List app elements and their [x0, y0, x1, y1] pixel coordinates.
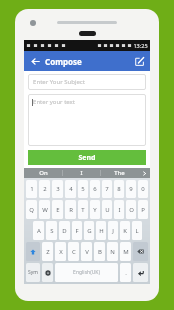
button[interactable]: W [39, 200, 50, 219]
button[interactable]: Edit [132, 54, 146, 68]
staticText: J [112, 227, 114, 235]
button[interactable]: Z [42, 242, 53, 261]
button[interactable]: 8 [114, 180, 124, 198]
staticText: W [42, 206, 48, 214]
button[interactable]: Q [26, 200, 37, 219]
staticText: V [85, 248, 89, 256]
button[interactable]: I [63, 168, 100, 178]
button[interactable]: K [120, 221, 130, 240]
button[interactable]: P [138, 200, 148, 219]
staticText: M [123, 248, 129, 256]
staticText: Z [46, 248, 50, 256]
button[interactable]: 5 [78, 180, 88, 198]
staticText: N [110, 248, 115, 256]
button[interactable]: Back [28, 54, 42, 68]
staticText: Enter your text [33, 98, 75, 106]
button[interactable]: 0 [138, 180, 148, 198]
staticText: I [80, 169, 83, 177]
staticText: 0 [141, 185, 145, 193]
button[interactable]: J [108, 221, 118, 240]
button[interactable]: M [120, 242, 131, 261]
button[interactable]: 6 [90, 180, 100, 198]
button[interactable]: More suggestions [138, 168, 150, 178]
button[interactable]: 1 [26, 180, 37, 198]
staticText: 5 [81, 185, 85, 193]
button[interactable]: 7 [102, 180, 112, 198]
staticText: E [56, 206, 60, 214]
button[interactable]: Y [90, 200, 100, 219]
staticText: The [114, 169, 125, 177]
staticText: I [118, 206, 121, 214]
button[interactable]: N [107, 242, 118, 261]
button[interactable]: L [132, 221, 142, 240]
staticText: 9 [129, 185, 133, 193]
button[interactable]: O [126, 200, 136, 219]
staticText: Y [93, 206, 97, 214]
button[interactable]: X [55, 242, 66, 261]
button[interactable]: The [101, 168, 138, 178]
button[interactable]: H [96, 221, 106, 240]
button[interactable]: Send [28, 150, 146, 165]
button[interactable]: 9 [126, 180, 136, 198]
staticText: Enter Your Subject [33, 78, 85, 86]
button[interactable]: C [68, 242, 79, 261]
button[interactable]: Enter your text [28, 94, 146, 146]
staticText: 3 [56, 185, 60, 193]
button[interactable]: V [81, 242, 92, 261]
staticText: K [123, 227, 127, 235]
staticText: C [72, 248, 76, 256]
button[interactable]: Backspace [133, 242, 148, 261]
button[interactable]: S [46, 221, 57, 240]
staticText: H [99, 227, 104, 235]
staticText: X [59, 248, 63, 256]
staticText: On [39, 169, 48, 177]
button[interactable]: B [94, 242, 105, 261]
button[interactable]: A [33, 221, 44, 240]
button[interactable]: . [120, 263, 131, 282]
button[interactable]: T [78, 200, 88, 219]
staticText: Sym [28, 269, 38, 276]
staticText: G [87, 227, 92, 235]
staticText: Compose [45, 56, 82, 67]
staticText: Send [78, 153, 96, 163]
staticText: U [105, 206, 110, 214]
staticText: 6 [93, 185, 97, 193]
staticText: 7 [105, 185, 109, 193]
button[interactable]: On [24, 168, 62, 178]
button[interactable]: Enter [133, 263, 148, 282]
button[interactable]: Shift [26, 242, 40, 261]
staticText: S [50, 227, 54, 235]
staticText: English(UK) [73, 269, 100, 276]
button[interactable]: F [72, 221, 82, 240]
staticText: L [135, 227, 139, 235]
button[interactable]: English(UK) [55, 263, 118, 282]
button[interactable]: E [52, 200, 63, 219]
button[interactable]: D [59, 221, 70, 240]
staticText: R [69, 206, 73, 214]
staticText: B [98, 248, 102, 256]
staticText: A [37, 227, 41, 235]
button[interactable]: Enter Your Subject [28, 74, 146, 90]
staticText: 2 [43, 185, 47, 193]
staticText: O [129, 206, 134, 214]
staticText: 4 [69, 185, 73, 193]
staticText: F [75, 227, 79, 235]
staticText: P [141, 206, 145, 214]
button[interactable]: 2 [39, 180, 50, 198]
staticText: D [62, 227, 67, 235]
button[interactable]: Sym [26, 263, 40, 282]
button[interactable]: R [65, 200, 76, 219]
button[interactable]: I [114, 200, 124, 219]
button[interactable]: 4 [65, 180, 76, 198]
button[interactable]: Settings [42, 263, 53, 282]
button[interactable]: U [102, 200, 112, 219]
button[interactable]: 3 [52, 180, 63, 198]
staticText: Q [29, 206, 34, 214]
staticText: 13:25 [133, 42, 148, 49]
staticText: T [81, 206, 85, 214]
staticText: 8 [117, 185, 121, 193]
staticText: 1 [30, 185, 34, 193]
staticText: . [125, 269, 127, 277]
button[interactable]: G [84, 221, 94, 240]
